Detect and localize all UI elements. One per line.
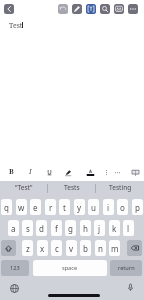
button[interactable]: Undo: [58, 4, 68, 14]
button[interactable]: e: [30, 199, 41, 215]
button[interactable]: p: [132, 199, 143, 215]
staticText: c: [55, 243, 59, 254]
button[interactable]: space: [33, 260, 107, 276]
staticText: Test: [9, 21, 23, 31]
button[interactable]: Format text: [86, 4, 96, 14]
button[interactable]: t: [59, 199, 70, 215]
button[interactable]: i: [103, 199, 114, 215]
staticText: I: [29, 167, 32, 177]
button[interactable]: Change keyboard: [10, 284, 19, 293]
button[interactable]: Search: [100, 4, 110, 14]
button[interactable]: More options: [128, 4, 138, 14]
staticText: q: [4, 202, 9, 213]
button[interactable]: Bold: [5, 166, 17, 178]
button[interactable]: v: [66, 240, 77, 256]
button[interactable]: Dictate: [126, 283, 135, 292]
staticText: r: [49, 202, 53, 213]
staticText: a: [11, 223, 16, 234]
button[interactable]: r: [45, 199, 56, 215]
button[interactable]: m: [109, 240, 120, 256]
staticText: p: [135, 202, 140, 213]
staticText: n: [98, 243, 103, 254]
button[interactable]: Highlight: [62, 166, 74, 178]
staticText: u: [91, 202, 96, 213]
staticText: “Test”: [15, 183, 33, 192]
staticText: w: [18, 202, 25, 213]
staticText: v: [69, 243, 74, 254]
button[interactable]: w: [16, 199, 27, 215]
button[interactable]: a: [8, 220, 19, 236]
staticText: b: [83, 243, 88, 254]
button[interactable]: n: [95, 240, 106, 256]
staticText: h: [83, 223, 88, 234]
button[interactable]: o: [117, 199, 128, 215]
button[interactable]: y: [74, 199, 85, 215]
button[interactable]: Insert: [129, 166, 141, 178]
staticText: k: [112, 223, 117, 234]
button[interactable]: k: [109, 220, 120, 236]
staticText: i: [107, 202, 110, 213]
staticText: 123: [10, 264, 20, 272]
button[interactable]: j: [94, 220, 105, 236]
button[interactable]: Tests: [48, 181, 96, 194]
button[interactable]: u: [88, 199, 99, 215]
button[interactable]: f: [51, 220, 62, 236]
button[interactable]: Text colour: [84, 166, 96, 178]
button[interactable]: Back: [4, 4, 14, 14]
button[interactable]: c: [51, 240, 62, 256]
staticText: x: [40, 243, 45, 254]
staticText: y: [77, 202, 82, 213]
button[interactable]: Shift: [1, 240, 16, 256]
staticText: j: [98, 223, 101, 234]
staticText: m: [111, 243, 119, 254]
button[interactable]: b: [80, 240, 91, 256]
button[interactable]: Testing: [96, 181, 144, 194]
staticText: d: [39, 223, 44, 234]
button[interactable]: l: [123, 220, 134, 236]
button[interactable]: Italic: [24, 166, 36, 178]
staticText: z: [26, 243, 30, 254]
button[interactable]: h: [80, 220, 91, 236]
button[interactable]: List options: [100, 166, 112, 178]
staticText: Tests: [64, 183, 80, 192]
staticText: e: [33, 202, 38, 213]
button[interactable]: “Test”: [0, 181, 48, 194]
button[interactable]: Backspace: [127, 240, 142, 256]
button[interactable]: return: [110, 260, 142, 276]
button[interactable]: Collaborate: [114, 4, 124, 14]
staticText: space: [62, 264, 78, 272]
staticText: t: [63, 202, 66, 213]
button[interactable]: x: [37, 240, 48, 256]
button[interactable]: z: [22, 240, 33, 256]
button[interactable]: Underline: [43, 166, 55, 178]
staticText: B: [9, 167, 14, 177]
button[interactable]: Numbers and symbols: [1, 260, 29, 276]
button[interactable]: d: [36, 220, 47, 236]
staticText: return: [118, 264, 135, 272]
staticText: f: [55, 223, 58, 234]
staticText: s: [26, 223, 30, 234]
button[interactable]: s: [22, 220, 33, 236]
staticText: l: [127, 223, 130, 234]
staticText: g: [68, 223, 73, 234]
button[interactable]: More formatting: [111, 166, 123, 178]
button[interactable]: g: [65, 220, 76, 236]
button[interactable]: Draw: [72, 4, 82, 14]
staticText: o: [120, 202, 125, 213]
button[interactable]: q: [1, 199, 12, 215]
staticText: Testing: [109, 183, 132, 192]
